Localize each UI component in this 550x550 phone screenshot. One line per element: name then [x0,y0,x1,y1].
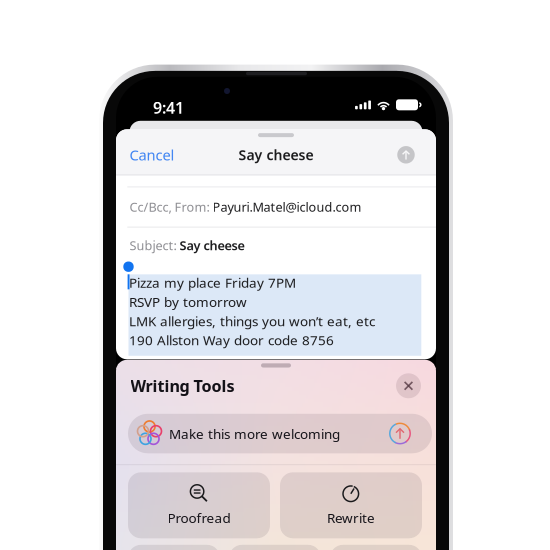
button[interactable]: Make this more welcoming [128,414,432,453]
staticText: Cc/Bcc, From: [129,198,212,215]
button[interactable]: Rewrite [280,472,422,538]
staticText: Subject: [129,237,179,254]
staticText: 9:41 [153,97,184,118]
button[interactable]: Professional [229,545,321,550]
staticText: Payuri.Matel@icloud.com [212,198,361,215]
button[interactable]: Concise [330,545,422,550]
staticText: Pizza my place Friday 7PM [129,274,296,291]
staticText: RSVP by tomorrow [129,293,247,311]
staticText: Say cheese [179,237,244,254]
staticText: Cancel [129,145,174,165]
staticText: 190 Allston Way door code 8756 [129,331,334,349]
staticText: Proofread [167,509,230,527]
staticText: LMK allergies, things you won’t eat, etc [129,312,375,330]
button[interactable]: Proofread [128,472,270,538]
button[interactable]: Send [391,141,421,169]
staticText: Make this more welcoming [169,425,340,443]
staticText: Rewrite [327,509,375,527]
button[interactable]: Cancel [121,143,203,167]
button[interactable]: Close [395,372,422,399]
button[interactable]: Friendly [128,545,220,550]
staticText: Say cheese [238,145,313,164]
staticText: Writing Tools [130,375,234,396]
